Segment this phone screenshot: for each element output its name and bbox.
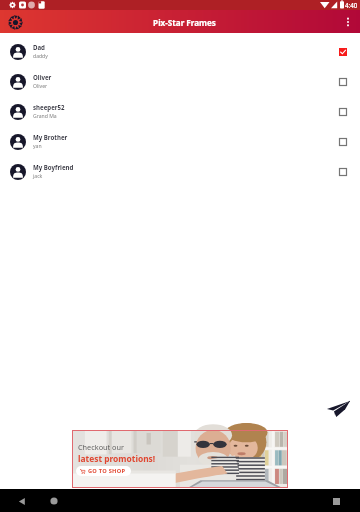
staticText: latest promotions! (78, 453, 156, 464)
button[interactable]: Dad (0, 37, 360, 67)
button[interactable]: More options (340, 14, 356, 30)
staticText: 4:40 (345, 1, 358, 9)
staticText: jack (33, 173, 43, 180)
button[interactable]: Not selected (336, 105, 350, 119)
button[interactable]: Selected (336, 45, 350, 59)
staticText: Oliver (33, 83, 48, 90)
button[interactable]: Send (324, 395, 352, 423)
button[interactable]: App logo (6, 13, 24, 31)
staticText: Grand Ma (33, 113, 57, 120)
staticText: Pix-Star Frames (153, 17, 216, 28)
button[interactable]: Back (14, 493, 30, 509)
button[interactable]: Not selected (336, 165, 350, 179)
staticText: Dad (33, 43, 45, 51)
staticText: Oliver (33, 73, 52, 81)
button[interactable]: My Brother (0, 127, 360, 157)
button[interactable]: sheeper52 (0, 97, 360, 127)
staticText: yan (33, 143, 42, 150)
button[interactable]: Home (46, 493, 62, 509)
staticText: GO TO SHOP (88, 467, 126, 475)
staticText: sheeper52 (33, 103, 65, 111)
button[interactable]: GO TO SHOP (76, 466, 131, 476)
staticText: daddy (33, 53, 48, 60)
button[interactable]: Checkout our latest promotions, go to sh… (72, 430, 288, 488)
button[interactable]: Not selected (336, 135, 350, 149)
staticText: My Brother (33, 133, 68, 141)
button[interactable]: Recents (328, 493, 344, 509)
staticText: My Boyfriend (33, 163, 74, 171)
button[interactable]: Oliver (0, 67, 360, 97)
button[interactable]: Not selected (336, 75, 350, 89)
button[interactable]: My Boyfriend (0, 157, 360, 187)
staticText: Checkout our (78, 442, 125, 452)
